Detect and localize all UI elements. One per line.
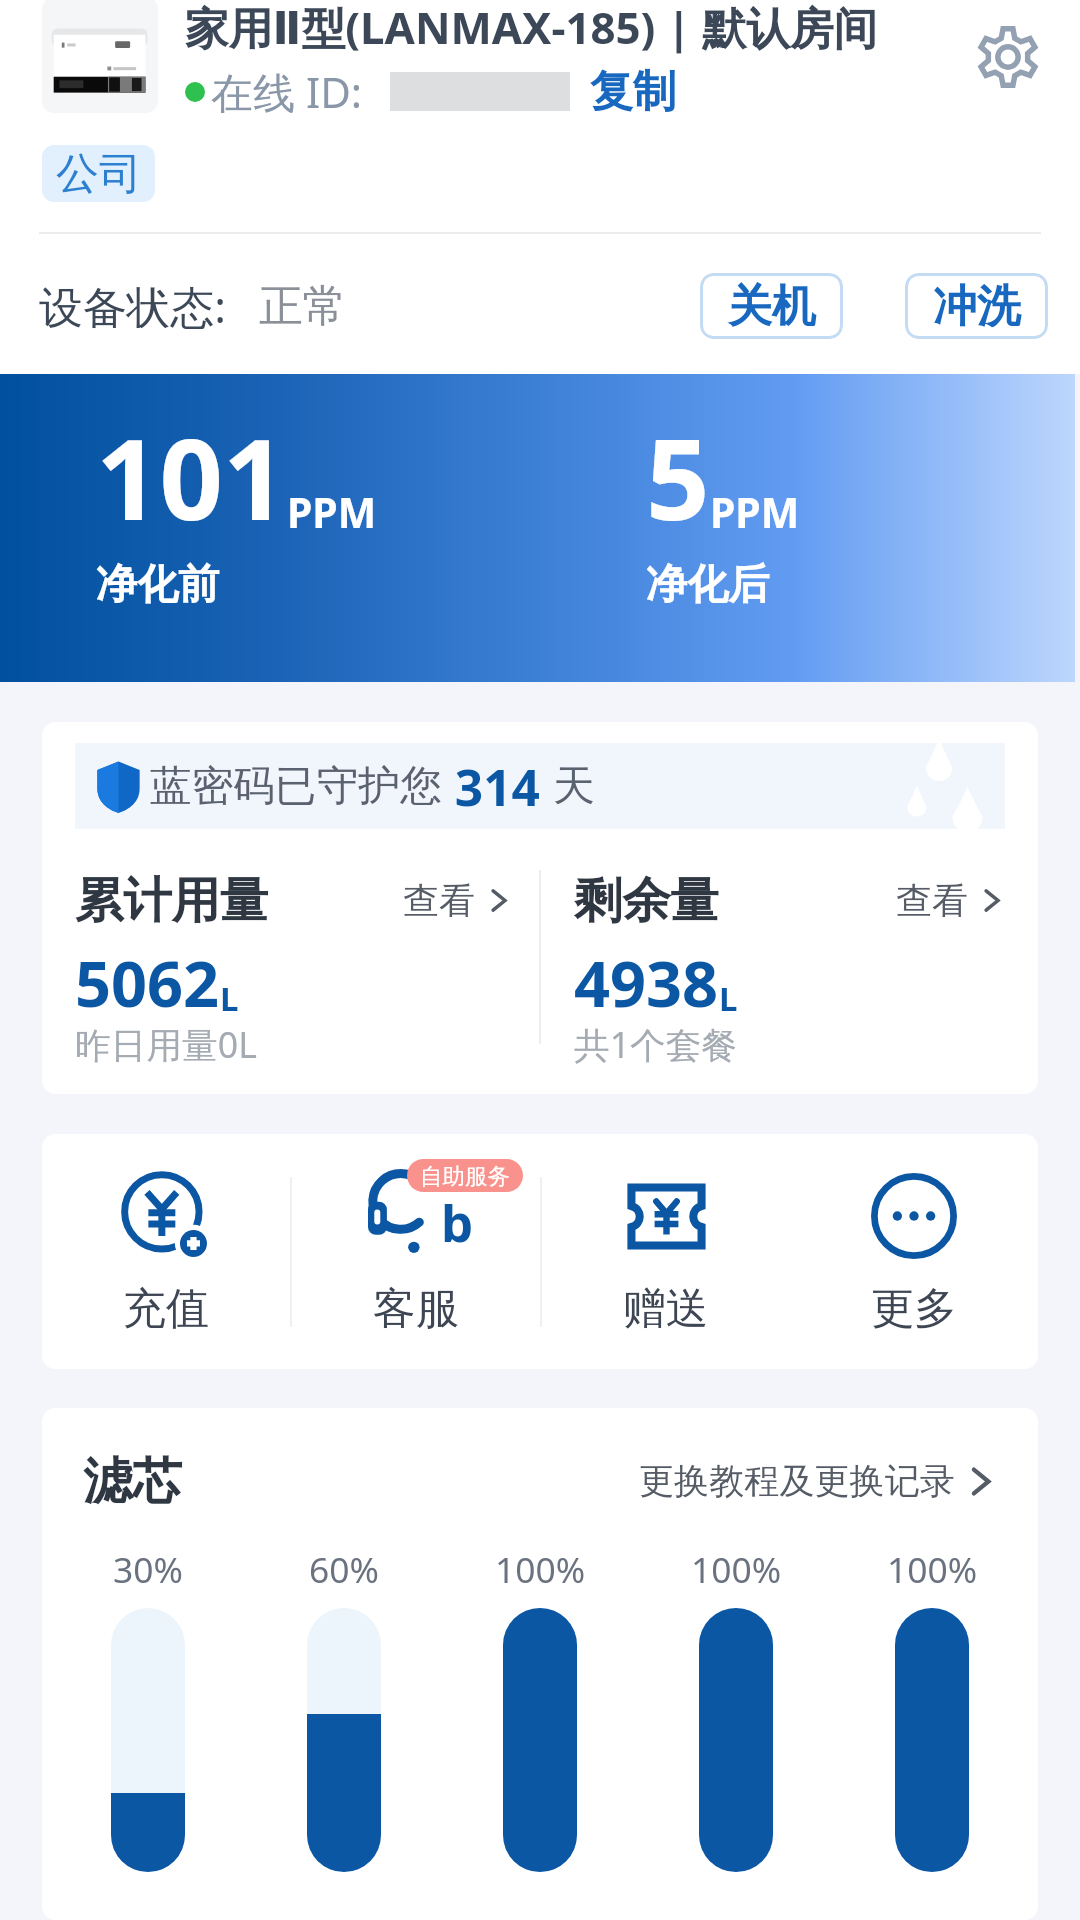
- staticText: 100%: [495, 1545, 586, 1593]
- staticText: 剩余量: [574, 870, 719, 931]
- staticText: L: [220, 976, 239, 1021]
- staticText: 更换教程及更换记录: [639, 1459, 955, 1503]
- staticText: 充值: [123, 1282, 209, 1336]
- staticText: 蓝密码已守护您: [150, 760, 442, 813]
- staticText: PPM: [710, 484, 800, 540]
- button[interactable]: b: [292, 1134, 540, 1369]
- staticText: 共1个套餐: [574, 1020, 738, 1069]
- button[interactable]: 冲洗: [905, 273, 1048, 339]
- staticText: 在线 ID:: [211, 63, 363, 120]
- button[interactable]: 更多: [790, 1134, 1038, 1369]
- staticText: 净化后: [646, 558, 770, 610]
- button[interactable]: 查看: [403, 878, 512, 923]
- button[interactable]: 查看: [896, 878, 1005, 923]
- staticText: 60%: [309, 1545, 379, 1593]
- button[interactable]: 关机: [700, 273, 843, 339]
- button[interactable]: 更换教程及更换记录: [639, 1459, 997, 1503]
- staticText: 滤芯: [83, 1450, 182, 1512]
- staticText: 客服: [373, 1282, 459, 1336]
- staticText: 查看: [403, 878, 475, 923]
- staticText: 5062: [75, 940, 220, 1026]
- staticText: 更多: [871, 1282, 957, 1336]
- staticText: 101: [96, 401, 287, 552]
- staticText: 赠送: [623, 1282, 709, 1336]
- staticText: b: [441, 1187, 474, 1256]
- staticText: 设备状态:: [39, 276, 226, 336]
- staticText: 净化前: [96, 558, 220, 610]
- staticText: 天: [553, 760, 595, 813]
- button[interactable]: 充值: [42, 1134, 290, 1369]
- staticText: 30%: [113, 1545, 183, 1593]
- staticText: 冲洗: [933, 279, 1021, 334]
- staticText: 家用Ⅱ型(LANMAX-185) | 默认房间: [185, 0, 878, 57]
- button[interactable]: Settings: [954, 3, 1062, 111]
- staticText: 正常: [259, 279, 347, 334]
- staticText: 公司: [56, 147, 142, 201]
- staticText: PPM: [287, 484, 377, 540]
- button[interactable]: 复制: [590, 65, 676, 119]
- button[interactable]: 公司: [42, 145, 155, 202]
- staticText: 关机: [728, 279, 816, 334]
- staticText: 100%: [691, 1545, 782, 1593]
- button[interactable]: 赠送: [542, 1134, 790, 1369]
- staticText: 累计用量: [75, 870, 269, 931]
- staticText: 100%: [887, 1545, 978, 1593]
- staticText: 5: [646, 401, 710, 552]
- staticText: 314: [442, 753, 553, 820]
- staticText: 查看: [896, 878, 968, 923]
- staticText: 昨日用量0L: [75, 1020, 257, 1069]
- staticText: 4938: [574, 940, 719, 1026]
- staticText: L: [719, 976, 738, 1021]
- staticText: 自助服务: [420, 1162, 510, 1190]
